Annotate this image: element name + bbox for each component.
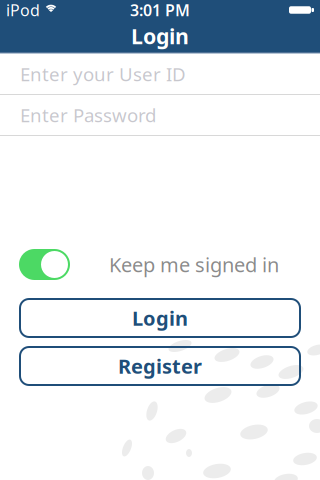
staticText: Login (132, 305, 188, 331)
staticText: Keep me signed in (109, 251, 279, 278)
staticText: Enter Password (20, 103, 156, 127)
staticText: iPod (6, 0, 40, 21)
staticText: Enter your User ID (20, 62, 186, 86)
staticText: Register (118, 353, 202, 379)
staticText: Login (131, 22, 189, 50)
staticText: 3:01 PM (130, 0, 190, 21)
